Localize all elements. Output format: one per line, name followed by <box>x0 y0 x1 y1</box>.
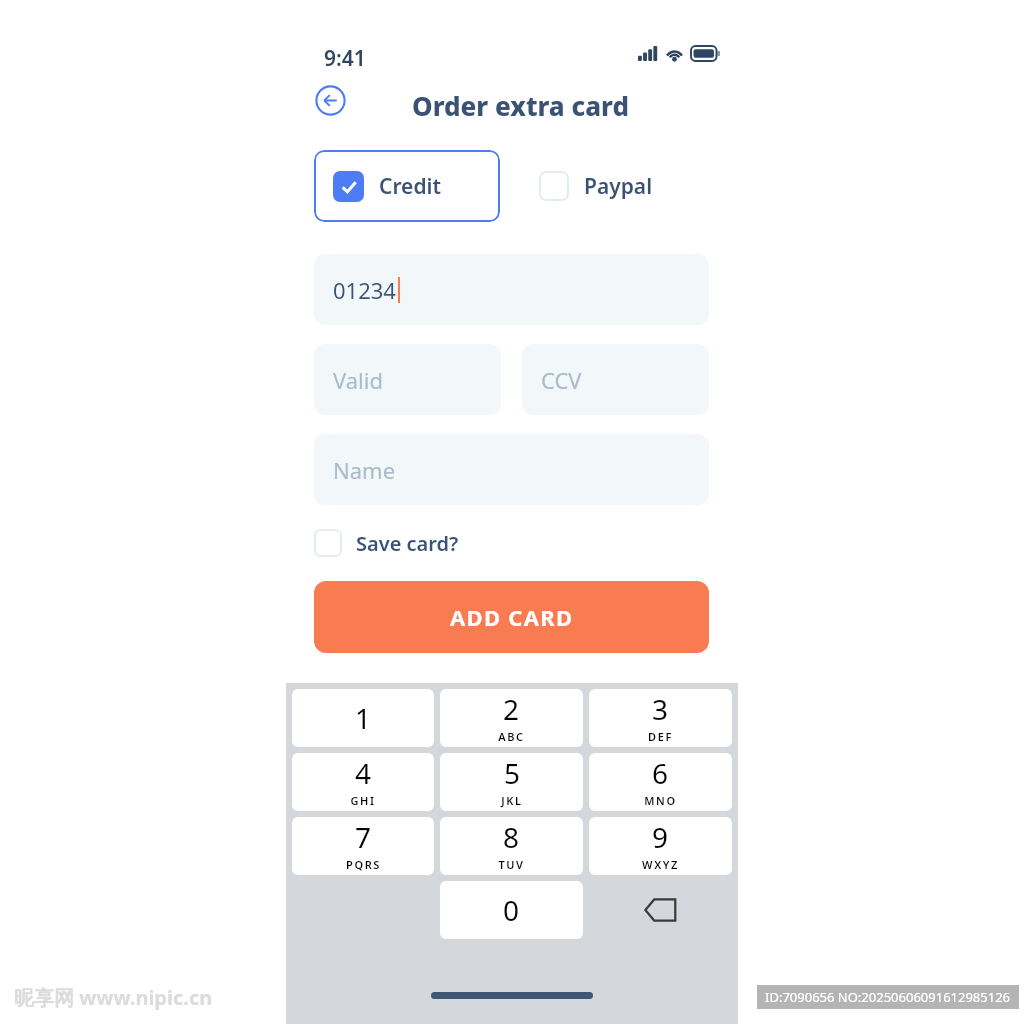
staticText: 01234 <box>333 275 396 305</box>
staticText: ABC <box>498 729 525 744</box>
staticText: PQRS <box>346 857 381 872</box>
staticText: Save card? <box>356 530 459 557</box>
button[interactable]: Credit <box>314 150 500 222</box>
staticText: ID:7090656 NO:20250606091612985126 <box>765 988 1011 1006</box>
staticText: 8 <box>503 818 520 856</box>
button[interactable]: 8 <box>440 817 583 875</box>
staticText: Name <box>333 455 396 485</box>
staticText: CCV <box>541 365 582 395</box>
button[interactable]: ADD CARD <box>314 581 709 653</box>
staticText: MNO <box>644 793 677 808</box>
staticText: WXYZ <box>642 857 679 872</box>
button[interactable]: Name <box>314 434 709 505</box>
button[interactable]: Paypal <box>539 166 653 206</box>
staticText: Paypal <box>584 172 653 201</box>
staticText: ADD CARD <box>450 602 574 632</box>
button[interactable]: 2 <box>440 689 583 747</box>
button[interactable]: CCV <box>522 344 709 415</box>
staticText: TUV <box>498 857 525 872</box>
staticText: 1 <box>355 699 372 737</box>
staticText: GHI <box>350 793 376 808</box>
staticText: JKL <box>501 793 523 808</box>
button[interactable]: Save card? <box>314 524 459 562</box>
button[interactable]: 4 <box>292 753 434 811</box>
staticText: 3 <box>652 690 669 728</box>
button[interactable]: 01234 <box>314 254 709 325</box>
button[interactable]: 7 <box>292 817 434 875</box>
staticText: Order extra card <box>412 88 629 123</box>
button[interactable]: 0 <box>440 881 583 939</box>
staticText: 昵享网 www.nipic.cn <box>14 984 213 1011</box>
staticText: 9 <box>652 818 669 856</box>
button[interactable]: Delete <box>589 881 732 939</box>
staticText: 5 <box>504 754 521 792</box>
staticText: DEF <box>648 729 673 744</box>
button[interactable]: 5 <box>440 753 583 811</box>
staticText: 2 <box>503 690 520 728</box>
button[interactable]: Back <box>314 84 347 117</box>
staticText: 7 <box>355 818 372 856</box>
staticText: 0 <box>503 891 520 929</box>
button[interactable]: 6 <box>589 753 732 811</box>
staticText: 6 <box>652 754 669 792</box>
button[interactable]: 1 <box>292 689 434 747</box>
button[interactable]: 9 <box>589 817 732 875</box>
staticText: Valid <box>333 365 383 395</box>
staticText: 4 <box>355 754 372 792</box>
button[interactable]: Valid <box>314 344 501 415</box>
button[interactable]: 3 <box>589 689 732 747</box>
staticText: 9:41 <box>324 44 366 73</box>
staticText: Credit <box>379 172 441 201</box>
